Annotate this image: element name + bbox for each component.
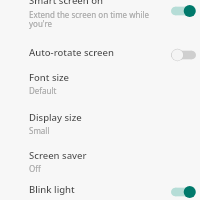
staticText: Small — [29, 125, 50, 136]
staticText: Auto-rotate screen — [29, 46, 114, 59]
button[interactable]: Blink light — [0, 179, 200, 200]
staticText: Default — [29, 85, 57, 96]
staticText: Off — [29, 163, 41, 174]
staticText: Font size — [29, 71, 70, 84]
button[interactable]: Auto-rotate screen — [0, 39, 200, 69]
button[interactable]: Smart screen on — [0, 0, 200, 39]
button[interactable]: Display size — [0, 109, 200, 149]
button[interactable]: Blink light toggle — [171, 185, 196, 199]
staticText: Smart screen on — [29, 0, 103, 7]
staticText: Blink light — [29, 183, 75, 196]
staticText: Screen saver — [29, 149, 87, 162]
staticText: Display size — [29, 111, 82, 124]
button[interactable]: Font size — [0, 69, 200, 109]
button[interactable]: Smart screen on toggle — [171, 4, 196, 18]
button[interactable]: Screen saver — [0, 149, 200, 179]
staticText: Extend the screen on time while you're l… — [29, 9, 167, 30]
button[interactable]: Auto-rotate screen toggle — [171, 48, 196, 62]
